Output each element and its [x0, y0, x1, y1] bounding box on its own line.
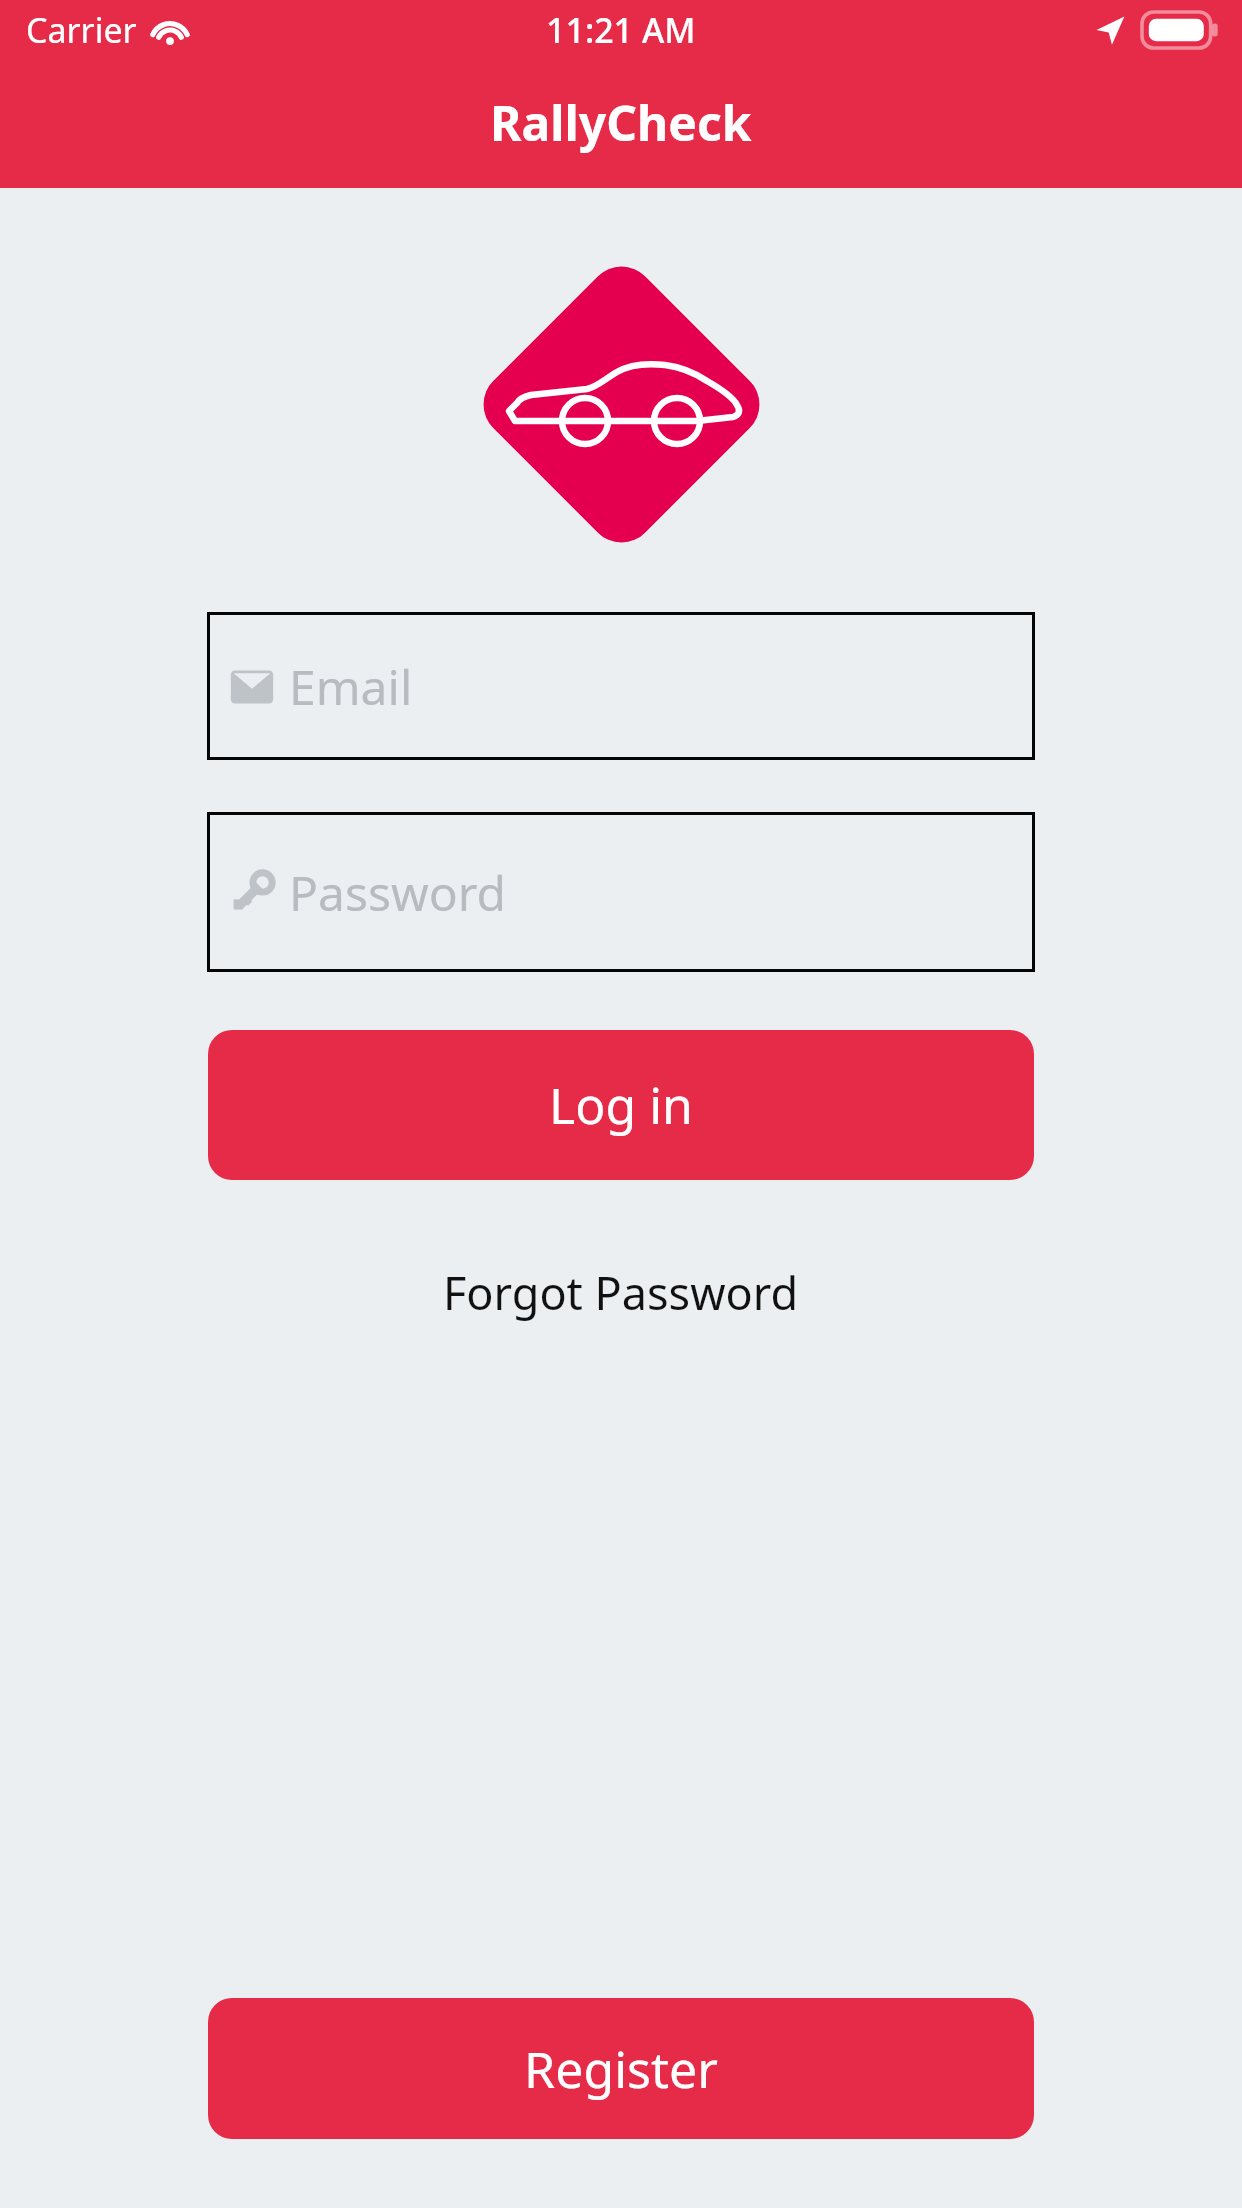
- button[interactable]: Email: [207, 612, 1035, 760]
- button[interactable]: Register: [208, 1998, 1034, 2139]
- staticText: RallyCheck: [490, 90, 752, 155]
- staticText: Email: [289, 654, 413, 719]
- button[interactable]: Password: [207, 812, 1035, 972]
- staticText: Carrier: [26, 7, 137, 53]
- staticText: Password: [289, 860, 507, 925]
- button[interactable]: Log in: [208, 1030, 1034, 1180]
- staticText: Log in: [549, 1071, 693, 1139]
- staticText: Register: [524, 2035, 718, 2103]
- staticText: 11:21 AM: [546, 7, 696, 53]
- button[interactable]: Forgot Password: [0, 1262, 1242, 1323]
- staticText: Forgot Password: [443, 1262, 799, 1323]
